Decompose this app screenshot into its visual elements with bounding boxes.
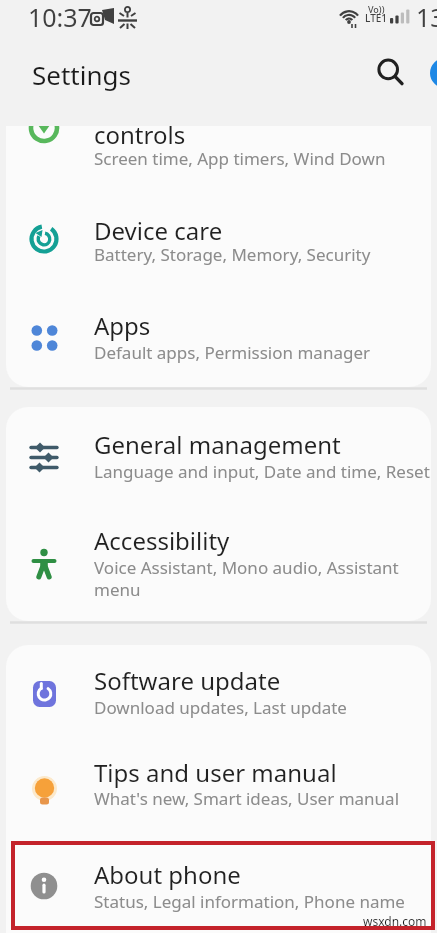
staticText: 10:37 <box>28 0 92 34</box>
staticText: menu <box>94 578 141 601</box>
button[interactable] <box>6 126 431 195</box>
staticText: Apps <box>94 309 151 342</box>
staticText: General management <box>94 428 341 461</box>
button[interactable] <box>6 291 431 387</box>
staticText: What's new, Smart ideas, User manual <box>94 787 400 810</box>
staticText: Vo)) <box>368 3 385 15</box>
button[interactable] <box>6 503 431 621</box>
button[interactable] <box>6 741 431 837</box>
staticText: Status, Legal information, Phone name <box>94 890 405 913</box>
staticText: Accessibility <box>94 524 230 557</box>
staticText: Battery, Storage, Memory, Security <box>94 243 371 266</box>
button[interactable] <box>372 53 408 89</box>
staticText: LTE1 <box>365 11 388 25</box>
staticText: Default apps, Permission manager <box>94 341 370 364</box>
staticText: wsxdn.com <box>363 913 427 929</box>
staticText: Device care <box>94 214 223 247</box>
button[interactable] <box>6 837 431 933</box>
button[interactable] <box>430 58 437 88</box>
staticText: Tips and user manual <box>94 756 337 789</box>
staticText: 13 <box>416 0 437 34</box>
staticText: Download updates, Last update <box>94 696 347 719</box>
staticText: Settings <box>32 57 131 92</box>
button[interactable] <box>6 407 431 503</box>
staticText: About phone <box>94 858 241 891</box>
staticText: controls <box>94 126 186 151</box>
button[interactable] <box>6 195 431 291</box>
staticText: Software update <box>94 664 281 697</box>
button[interactable] <box>6 645 431 741</box>
staticText: Screen time, App timers, Wind Down <box>94 147 386 170</box>
staticText: Language and input, Date and time, Reset <box>94 460 430 483</box>
staticText: Voice Assistant, Mono audio, Assistant <box>94 556 399 579</box>
